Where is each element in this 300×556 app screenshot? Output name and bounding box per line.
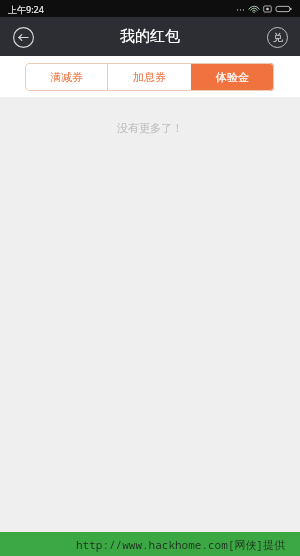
staticText: 满减券	[50, 70, 83, 84]
staticText: 兑	[273, 31, 283, 44]
staticText: http://www.hackhome.com[网侠]提供	[76, 537, 285, 552]
button[interactable]: 满减券	[25, 63, 107, 91]
staticText: 加息券	[133, 70, 166, 84]
staticText: 没有更多了！	[117, 121, 183, 135]
button[interactable]: 兑换 Redeem	[262, 22, 292, 52]
button[interactable]: 体验金	[191, 63, 274, 91]
staticText: 我的红包	[120, 27, 180, 46]
staticText: 体验金	[216, 70, 249, 84]
button[interactable]: 加息券	[108, 63, 191, 91]
staticText: 上午9:24	[8, 3, 44, 15]
button[interactable]: Back	[8, 22, 38, 52]
